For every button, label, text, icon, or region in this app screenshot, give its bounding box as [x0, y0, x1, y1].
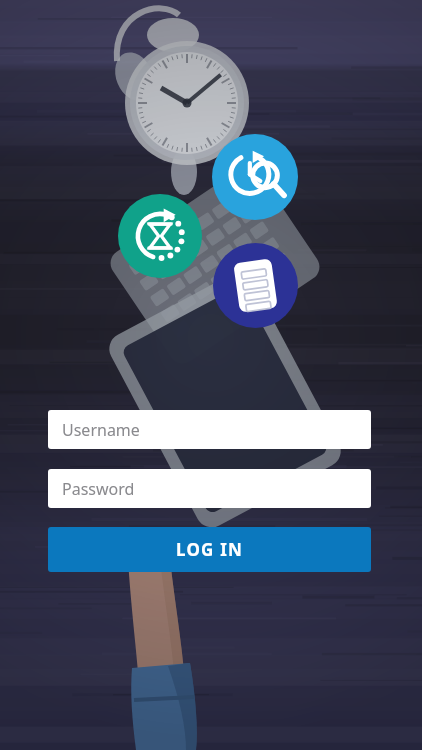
staticText: LOG IN	[176, 538, 243, 561]
staticText: Password	[62, 478, 135, 500]
button[interactable]: Password	[48, 469, 371, 508]
staticText: Username	[62, 419, 140, 441]
button[interactable]: Reports	[213, 243, 298, 328]
button[interactable]: LOG IN	[48, 527, 371, 572]
button[interactable]: Username	[48, 410, 371, 449]
button[interactable]: Time tracking search	[212, 134, 298, 220]
button[interactable]: Timer history	[118, 194, 202, 278]
